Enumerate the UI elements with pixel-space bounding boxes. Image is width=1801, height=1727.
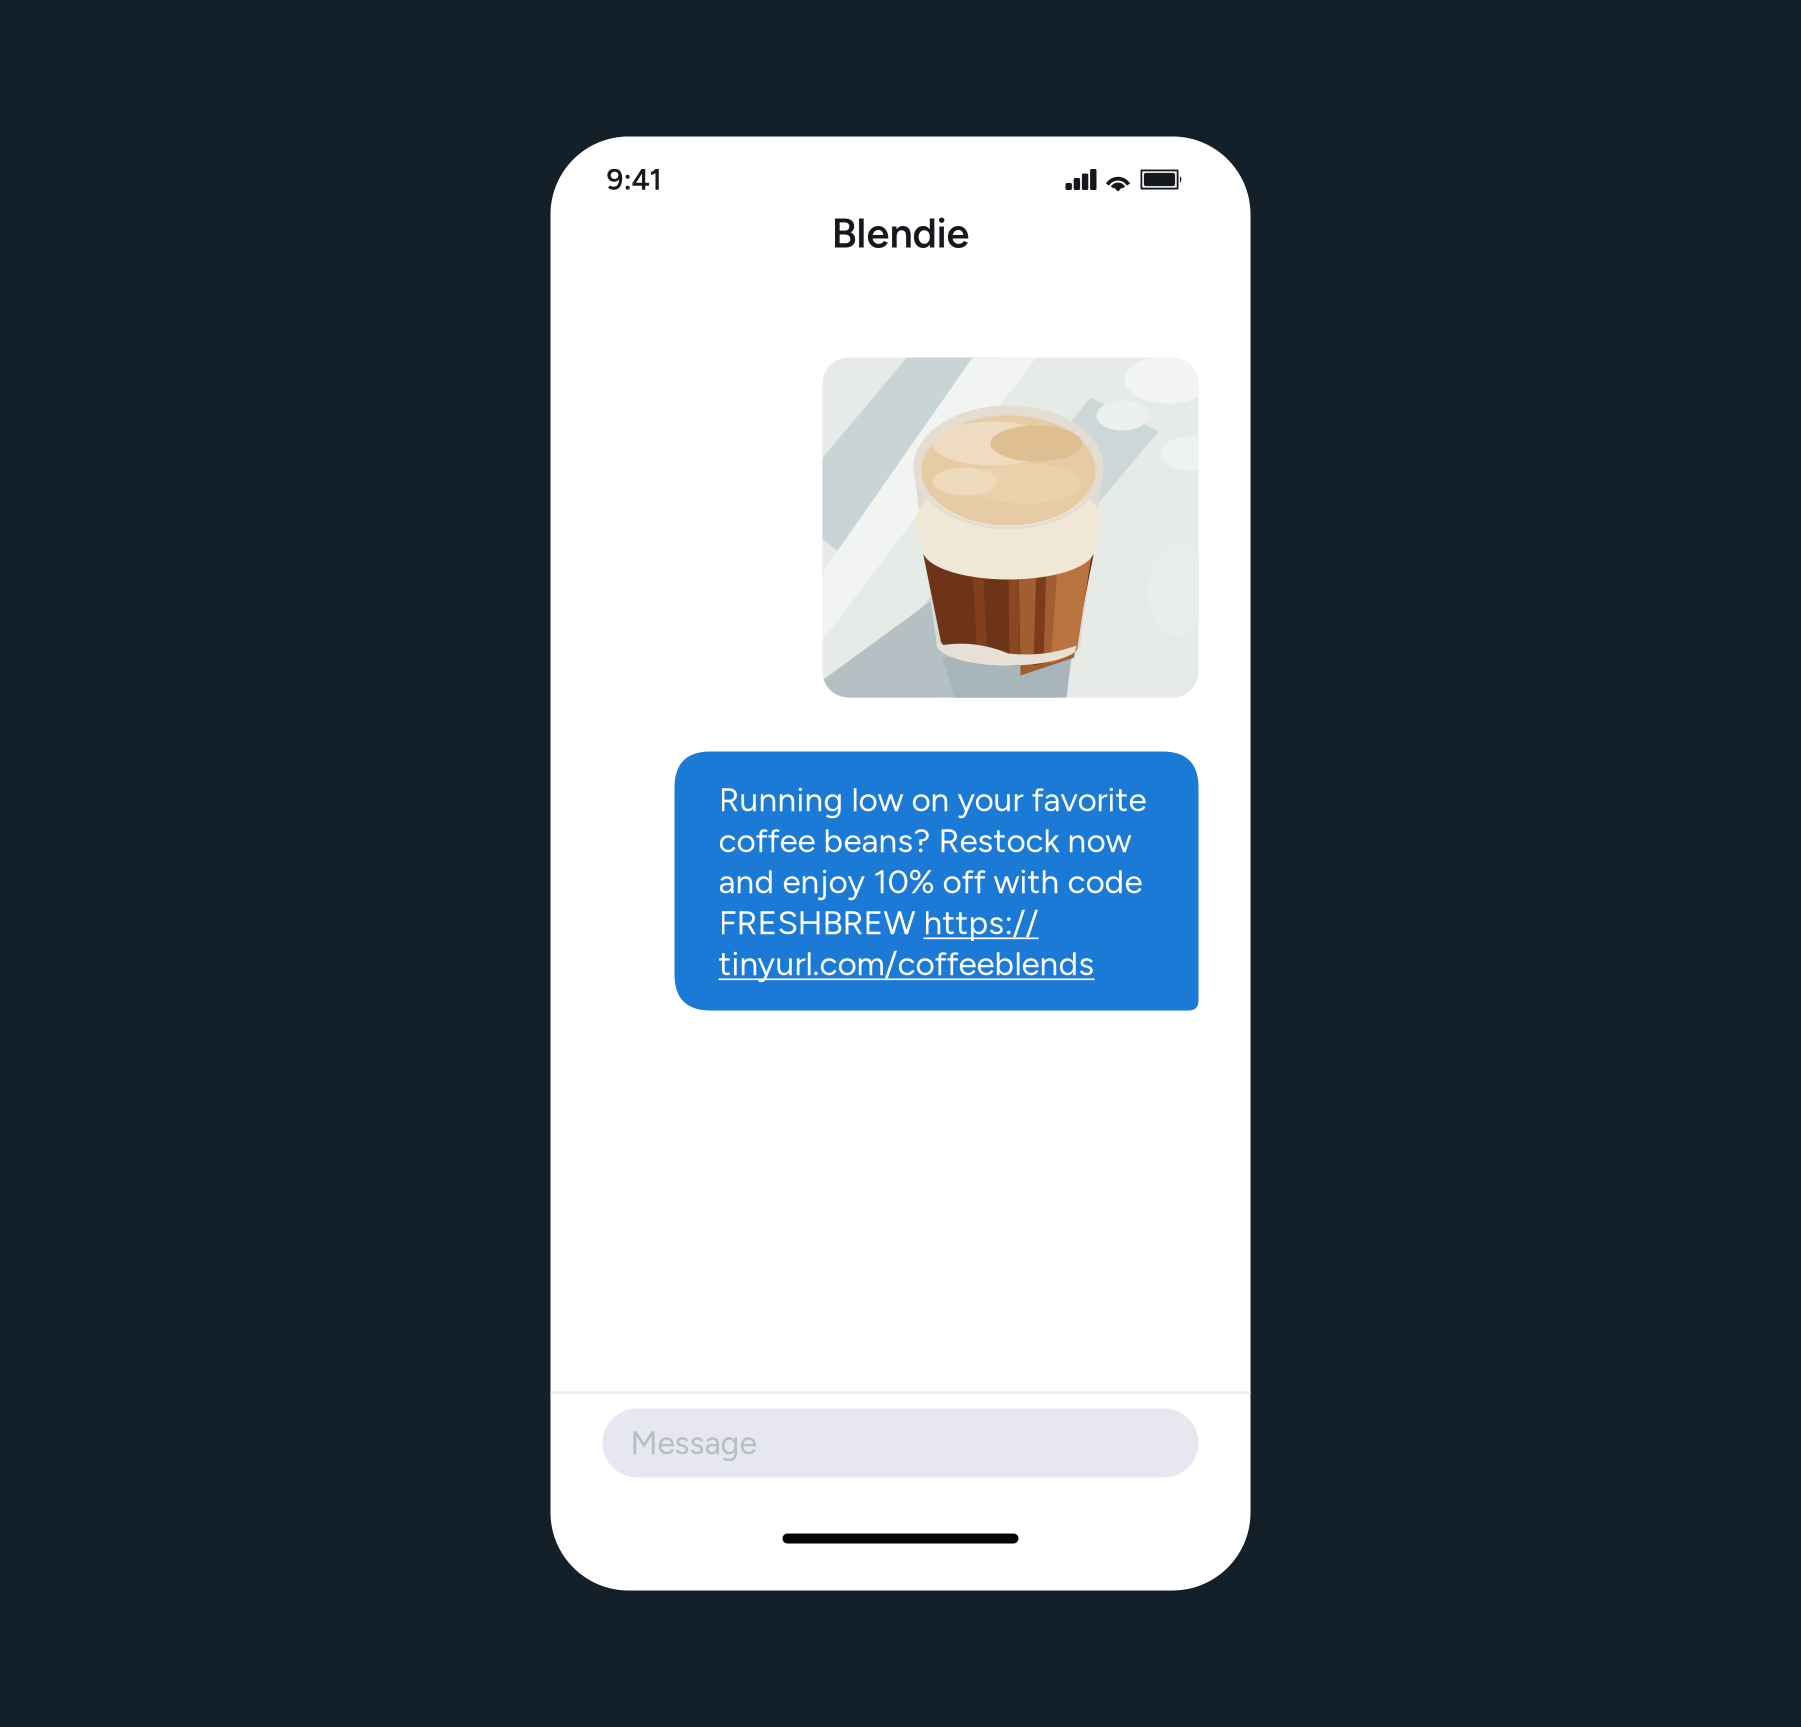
staticText: Blendie xyxy=(831,208,969,258)
button[interactable]: Blendie xyxy=(550,200,1250,265)
button[interactable]: Photo of a glass of coffee xyxy=(822,357,1198,697)
staticText: Message xyxy=(630,1424,756,1462)
staticText: 9:41 xyxy=(606,162,661,197)
button[interactable]: Message xyxy=(602,1408,1198,1477)
button[interactable]: Running low on your favorite coffee bean… xyxy=(674,751,1198,1011)
staticText: Running low on your favorite coffee bean… xyxy=(718,779,1146,983)
